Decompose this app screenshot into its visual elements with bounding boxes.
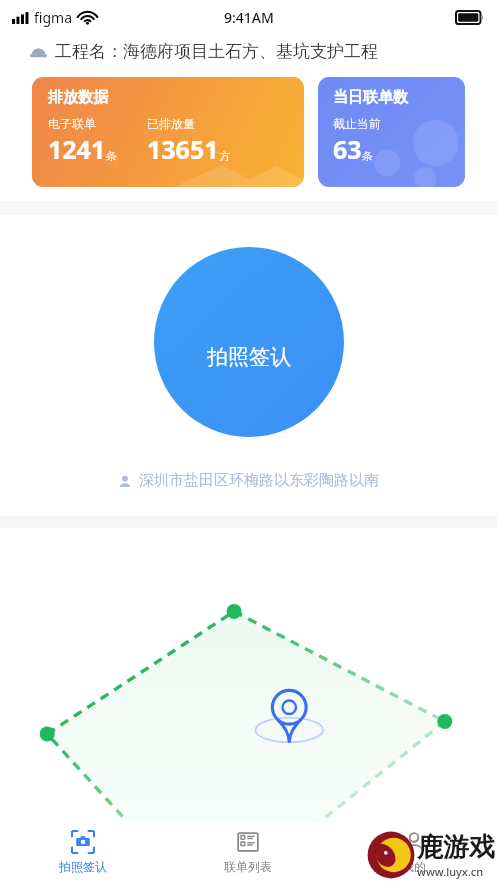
staticText: 我的 <box>402 859 426 874</box>
staticText: 条 <box>106 149 117 163</box>
staticText: 深圳市盐田区环梅路以东彩陶路以南 <box>139 471 379 490</box>
button[interactable]: 当日联单数 <box>318 77 465 187</box>
staticText: 鹿游戏 <box>417 831 495 864</box>
staticText: 9:41AM <box>224 8 274 27</box>
staticText: figma <box>34 8 72 27</box>
staticText: 电子联单 <box>48 116 96 131</box>
staticText: 方 <box>219 149 230 163</box>
staticText: 截止当前 <box>333 116 381 131</box>
staticText: www.luyx.cn <box>417 864 484 879</box>
staticText: 13651 <box>147 132 219 166</box>
staticText: 63 <box>333 132 362 166</box>
button[interactable]: 拍照签认 <box>154 247 344 437</box>
staticText: 拍照签认 <box>59 859 107 874</box>
staticText: 工程名：海德府项目土石方、基坑支护工程 <box>55 41 378 62</box>
staticText: 排放数据 <box>48 88 108 107</box>
button[interactable]: 排放数据 <box>32 77 304 187</box>
button[interactable]: 我的 <box>331 821 497 883</box>
staticText: 条 <box>362 149 373 163</box>
staticText: 当日联单数 <box>333 88 408 107</box>
staticText: 拍照签认 <box>207 344 291 370</box>
staticText: 已排放量 <box>147 116 195 131</box>
button[interactable]: 拍照签认 <box>0 821 165 883</box>
staticText: 1241 <box>48 132 106 166</box>
button[interactable]: 联单列表 <box>165 821 331 883</box>
staticText: 联单列表 <box>224 859 272 874</box>
